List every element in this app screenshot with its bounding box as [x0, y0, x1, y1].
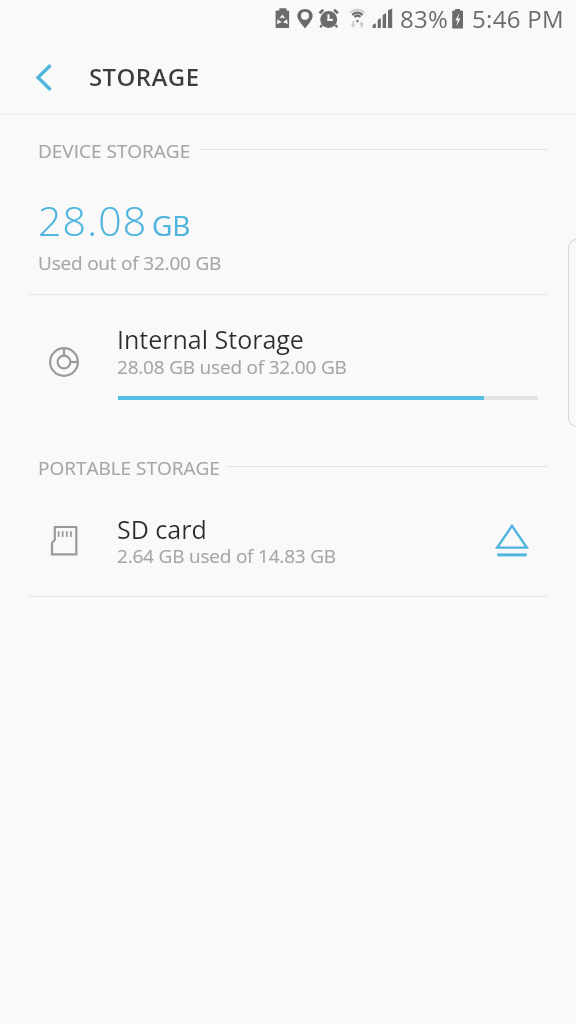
staticText: PORTABLE STORAGE — [38, 455, 220, 481]
staticText: 2.64 GB used of 14.83 GB — [117, 543, 336, 569]
staticText: Internal Storage — [117, 322, 304, 356]
button[interactable]: Back — [13, 48, 73, 108]
staticText: GB — [152, 206, 191, 244]
staticText: DEVICE STORAGE — [38, 138, 191, 164]
staticText: 5:46 PM — [472, 2, 564, 35]
staticText: 28.08 GB used of 32.00 GB — [117, 354, 347, 380]
staticText: SD card — [117, 512, 207, 546]
staticText: STORAGE — [89, 60, 200, 93]
button[interactable]: Eject SD card — [484, 512, 540, 568]
staticText: 83% — [400, 2, 449, 35]
staticText: 28.08 — [38, 192, 148, 248]
button[interactable] — [0, 295, 576, 410]
button[interactable] — [0, 496, 576, 596]
staticText: Used out of 32.00 GB — [38, 250, 222, 276]
